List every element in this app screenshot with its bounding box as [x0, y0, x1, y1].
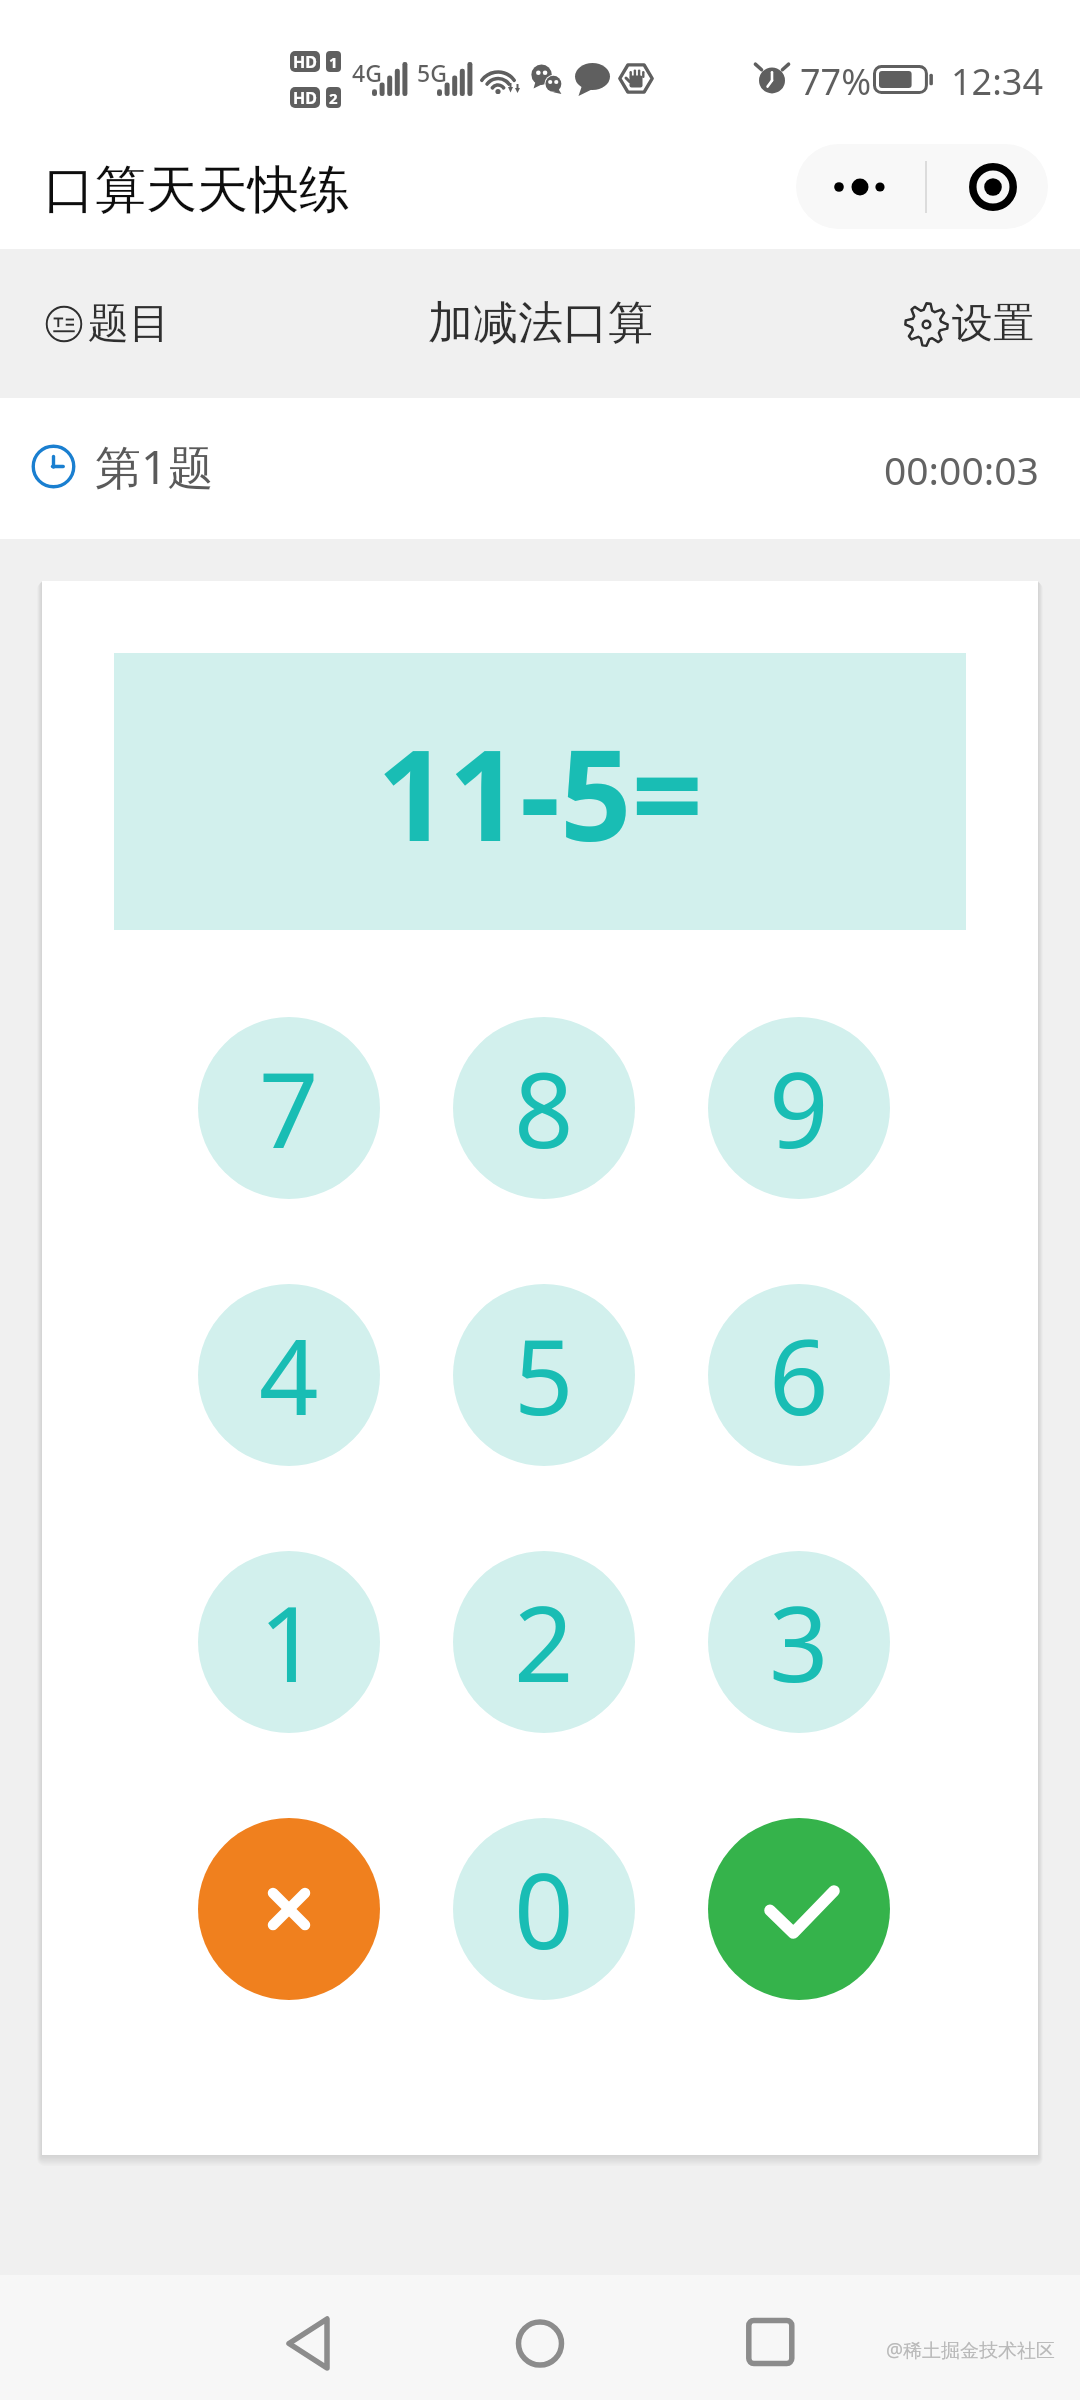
staticText: 第1题 — [95, 435, 214, 498]
button[interactable]: Close mini program — [927, 144, 1048, 229]
staticText: 7 — [259, 1037, 319, 1179]
button[interactable]: 4 — [198, 1284, 380, 1466]
staticText: 5G — [417, 57, 447, 88]
staticText: 8 — [514, 1037, 574, 1179]
button[interactable]: 7 — [198, 1017, 380, 1199]
staticText: 4 — [259, 1304, 319, 1446]
button[interactable]: Clear — [198, 1818, 380, 2000]
staticText: 77% — [800, 57, 872, 106]
button[interactable]: 9 — [708, 1017, 890, 1199]
button[interactable]: 0 — [453, 1818, 635, 2000]
button[interactable]: Back — [270, 2302, 348, 2380]
button[interactable]: Recents — [730, 2302, 808, 2380]
button[interactable]: 3 — [708, 1551, 890, 1733]
staticText: @稀土掘金技术社区 — [886, 2337, 1056, 2363]
button[interactable]: 题目 — [45, 298, 170, 350]
staticText: 1 — [259, 1571, 319, 1713]
staticText: 00:00:03 — [884, 443, 1039, 496]
button[interactable]: 8 — [453, 1017, 635, 1199]
staticText: HD — [293, 51, 317, 72]
staticText: 加减法口算 — [428, 295, 653, 352]
staticText: 设置 — [952, 298, 1034, 350]
staticText: 6 — [769, 1304, 829, 1446]
button[interactable]: 6 — [708, 1284, 890, 1466]
staticText: 4G — [352, 57, 382, 88]
button[interactable]: Home — [501, 2302, 579, 2380]
button[interactable]: Confirm — [708, 1818, 890, 2000]
button[interactable]: 5 — [453, 1284, 635, 1466]
staticText: 题目 — [88, 298, 170, 350]
button[interactable]: 1 — [198, 1551, 380, 1733]
staticText: 1 — [329, 52, 338, 72]
staticText: HD — [293, 87, 317, 108]
staticText: 11-5= — [377, 707, 703, 877]
button[interactable]: 设置 — [904, 298, 1034, 350]
staticText: 9 — [769, 1037, 829, 1179]
staticText: 2 — [514, 1571, 574, 1713]
staticText: 口算天天快练 — [44, 158, 350, 222]
button[interactable]: More options — [796, 144, 925, 229]
staticText: 2 — [329, 88, 338, 108]
staticText: 3 — [769, 1571, 829, 1713]
staticText: 0 — [514, 1838, 574, 1980]
staticText: 5 — [514, 1304, 574, 1446]
button[interactable]: 2 — [453, 1551, 635, 1733]
staticText: 12:34 — [951, 57, 1044, 106]
